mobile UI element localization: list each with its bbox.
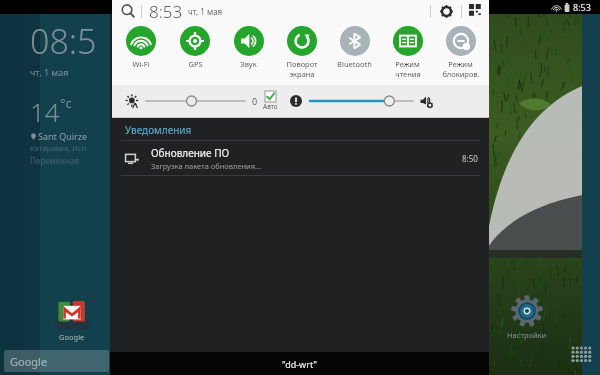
button[interactable]: Режим — [381, 22, 434, 85]
button[interactable]: Настройки — [439, 4, 454, 19]
staticText: Авто — [263, 102, 278, 111]
button[interactable]: Google — [4, 350, 109, 372]
staticText: чт, 1 мая — [188, 6, 223, 17]
staticText: Уведомления — [125, 123, 192, 137]
staticText: Катаравия, Исп — [30, 143, 87, 153]
staticText: Звук — [240, 59, 257, 69]
staticText: Sant Quirze — [38, 130, 88, 142]
staticText: блокиров. — [442, 69, 480, 79]
staticText: Обновление ПО — [151, 146, 230, 160]
staticText: 8:50 — [462, 153, 478, 164]
button[interactable]: Яркость — [126, 95, 139, 108]
staticText: 8:53 — [149, 0, 183, 22]
staticText: Настройки — [507, 330, 547, 340]
staticText: Режим — [395, 59, 420, 69]
button[interactable] — [310, 93, 413, 109]
button[interactable]: Google — [55, 297, 89, 342]
staticText: чтения — [395, 69, 421, 79]
button[interactable]: Громкость — [290, 95, 302, 107]
button[interactable]: Поиск — [120, 3, 136, 19]
staticText: Переменная — [30, 155, 79, 166]
staticText: GPS — [188, 59, 203, 69]
staticText: °c — [60, 94, 72, 112]
button[interactable]: GPS — [168, 22, 222, 85]
staticText: 14 — [30, 94, 60, 129]
button[interactable]: Авто — [263, 91, 278, 111]
staticText: Поворот — [286, 59, 318, 69]
button[interactable]: Приложения — [571, 345, 593, 367]
staticText: Bluetooth — [337, 59, 372, 69]
staticText: 8:53 — [573, 1, 591, 13]
button[interactable]: Звук — [222, 22, 275, 85]
button[interactable]: Быстрые настройки — [469, 4, 483, 18]
staticText: 0 — [252, 95, 258, 107]
button[interactable]: Поворот — [275, 22, 328, 85]
staticText: Режим — [448, 59, 473, 69]
button[interactable]: Настройки — [507, 293, 547, 340]
staticText: Wi-Fi — [132, 59, 150, 69]
button[interactable]: Режим — [434, 22, 487, 85]
staticText: Google — [10, 354, 48, 369]
button[interactable]: Wi-Fi — [114, 22, 168, 85]
staticText: Google — [59, 332, 85, 342]
staticText: Загрузка пакета обновления… — [151, 161, 262, 171]
staticText: чт, 1 мая — [30, 66, 69, 78]
button[interactable] — [146, 93, 245, 109]
button[interactable]: Bluetooth — [328, 22, 381, 85]
staticText: экрана — [289, 69, 315, 79]
staticText: "dd-wrt" — [282, 358, 317, 370]
staticText: 08:5 — [30, 18, 97, 64]
button[interactable]: Обновление ПО — [112, 141, 489, 175]
button[interactable]: Настройки звука — [420, 95, 433, 108]
